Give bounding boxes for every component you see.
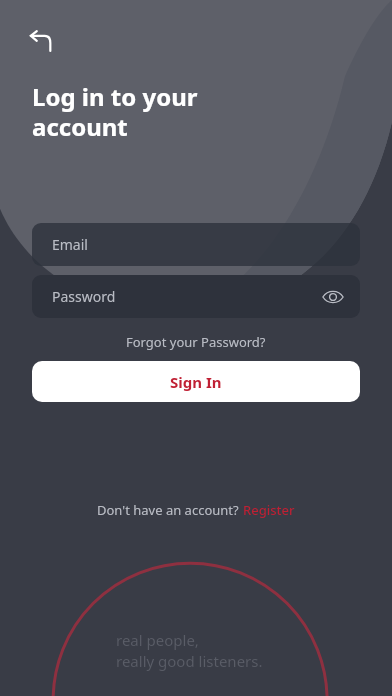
button[interactable]: Password [32,275,360,318]
button[interactable]: Email [32,223,360,266]
staticText: Log in to your account [32,80,198,143]
staticText: Password [52,287,116,306]
button[interactable]: Register [243,501,295,519]
staticText: real people, really good listeners. [116,630,263,672]
button[interactable]: Forgot your Password? [116,330,276,354]
staticText: Don't have an account? [97,501,243,519]
button[interactable]: Show password [316,280,350,314]
button[interactable]: Sign In [32,361,360,402]
staticText: Email [52,235,88,254]
staticText: Sign In [170,372,222,392]
button[interactable]: Back [20,18,64,62]
